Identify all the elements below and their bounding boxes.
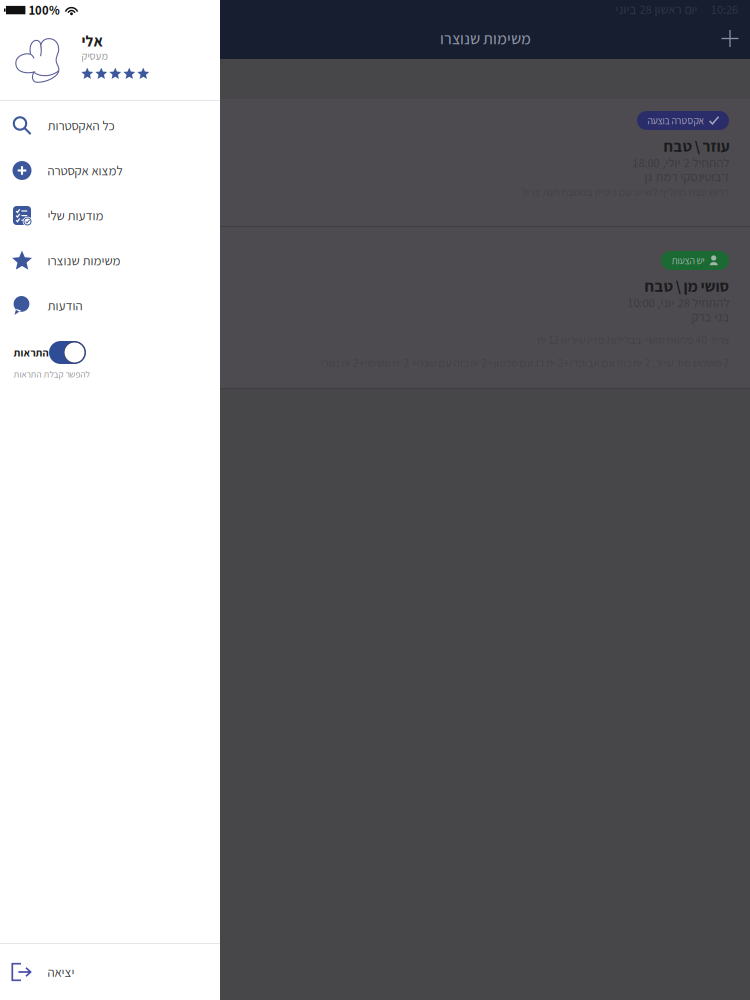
button[interactable]: למצוא אקסטרה	[0, 148, 220, 193]
button[interactable]: יציאה	[0, 944, 220, 1000]
staticText: משימות שנוצרו	[439, 28, 530, 49]
staticText: ז'בוטינסקי רמת גן	[644, 168, 729, 185]
button[interactable]: כל האקסטרות	[0, 103, 220, 148]
button[interactable]: אקסטרה בוצעה	[637, 111, 729, 130]
staticText: יום ראשון 28 ביוני	[615, 1, 697, 17]
staticText: מעסיק	[81, 49, 107, 63]
button[interactable]: הוסף משימה	[710, 18, 750, 58]
staticText: עוזר \ טבח	[663, 135, 729, 156]
button[interactable]: התראות	[49, 341, 86, 364]
staticText: להפשר קבלת התראות	[13, 368, 89, 380]
staticText: משימות שנוצרו	[47, 252, 120, 269]
staticText: למצוא אקסטרה	[47, 162, 122, 179]
staticText: כל האקסטרות	[47, 117, 114, 134]
staticText: להתחיל 2 יולי, 18:00	[632, 154, 729, 171]
staticText: התראות	[13, 345, 48, 359]
button[interactable]: יש הצעות	[661, 251, 729, 270]
staticText: להתחיל 28 יוני, 10:00	[627, 294, 729, 311]
staticText: אקסטרה בוצעה	[647, 114, 704, 127]
staticText: סושי מן \ טבח	[644, 275, 729, 296]
button[interactable]: מודעות שלי	[0, 193, 220, 238]
button[interactable]: משימות שנוצרו	[0, 238, 220, 283]
staticText: 100%	[29, 2, 60, 18]
button[interactable]: הודעות	[0, 283, 220, 328]
staticText: יציאה	[47, 963, 74, 981]
staticText: הודעות	[47, 297, 82, 314]
staticText: יש הצעות	[671, 254, 704, 267]
staticText: בני ברק	[691, 308, 729, 325]
staticText: מודעות שלי	[47, 207, 103, 224]
staticText: אלי	[81, 31, 102, 51]
staticText: 10:26	[711, 1, 738, 17]
